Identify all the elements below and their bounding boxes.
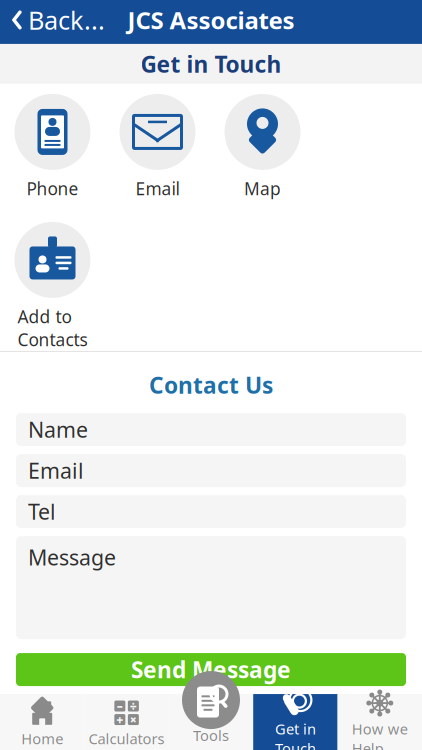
staticText: Get in Touch — [275, 719, 316, 750]
button[interactable]: Tel — [16, 495, 406, 528]
button[interactable]: Home — [0, 694, 84, 750]
button[interactable]: Email — [105, 94, 210, 200]
staticText: Home — [21, 729, 63, 748]
button[interactable]: Tools — [169, 694, 253, 750]
button[interactable]: Message — [16, 536, 406, 639]
button[interactable]: Get in Touch — [253, 694, 338, 750]
staticText: Get in Touch — [140, 49, 281, 79]
staticText: Map — [244, 177, 281, 200]
staticText: Send Message — [131, 654, 291, 685]
staticText: Calculators — [89, 729, 165, 748]
button[interactable]: How we Help — [338, 694, 422, 750]
staticText: + — [116, 712, 123, 727]
button[interactable]: Tools — [169, 671, 253, 729]
button[interactable]: Map — [210, 94, 315, 200]
button[interactable]: Back — [0, 0, 105, 45]
staticText: Tools — [193, 726, 229, 745]
staticText: Email — [135, 177, 179, 200]
staticText: Back... — [28, 3, 105, 37]
staticText: ÷ — [130, 698, 137, 714]
staticText: × — [130, 712, 137, 727]
staticText: Tel — [28, 497, 56, 526]
staticText: Name — [28, 415, 88, 444]
button[interactable]: Send Message — [16, 653, 406, 686]
staticText: Add to Contacts — [17, 305, 87, 351]
button[interactable]: Name — [16, 413, 406, 446]
staticText: Email — [28, 456, 84, 485]
staticText: Message — [28, 543, 116, 571]
staticText: JCS Associates — [127, 4, 294, 36]
button[interactable]: Email — [16, 454, 406, 487]
button[interactable]: – — [84, 694, 169, 750]
staticText: How we Help — [352, 719, 408, 750]
button[interactable]: Add to Contacts — [0, 222, 105, 351]
staticText: Contact Us — [149, 370, 273, 400]
button[interactable]: Phone — [0, 94, 105, 200]
staticText: – — [117, 698, 123, 714]
staticText: Phone — [26, 177, 78, 200]
